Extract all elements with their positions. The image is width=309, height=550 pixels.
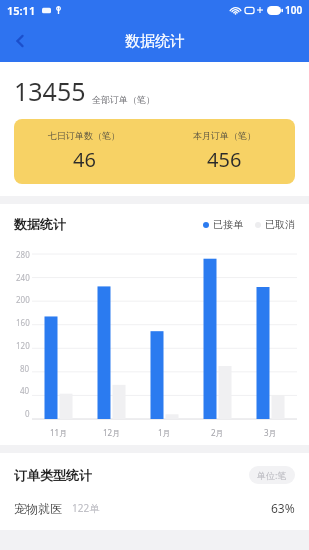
- staticText: 11月: [50, 427, 68, 438]
- staticText: 1月: [158, 427, 171, 438]
- button[interactable]: 宠物就医: [0, 500, 309, 516]
- staticText: 已接单: [213, 218, 243, 231]
- staticText: 3月: [264, 427, 277, 438]
- staticText: 280: [16, 249, 30, 260]
- staticText: 240: [16, 272, 30, 283]
- staticText: 456: [207, 146, 242, 173]
- staticText: 0: [25, 408, 30, 419]
- button[interactable]: 七日订单数（笔）: [14, 119, 295, 184]
- staticText: 12月: [103, 427, 121, 438]
- staticText: 80: [20, 363, 30, 374]
- staticText: 本月订单（笔）: [193, 130, 256, 141]
- staticText: 200: [16, 294, 30, 305]
- staticText: 2月: [211, 427, 224, 438]
- staticText: 122单: [72, 501, 100, 515]
- staticText: 46: [73, 146, 96, 173]
- staticText: 全部订单（笔）: [92, 94, 155, 105]
- staticText: 160: [16, 317, 30, 328]
- button[interactable]: Back: [0, 21, 40, 61]
- staticText: 七日订单数（笔）: [48, 130, 120, 141]
- staticText: 100: [285, 3, 303, 17]
- staticText: 数据统计: [125, 32, 185, 51]
- staticText: 15:11: [7, 3, 36, 18]
- staticText: 订单类型统计: [14, 467, 92, 483]
- staticText: 宠物就医: [14, 501, 62, 516]
- staticText: 已取消: [265, 218, 295, 231]
- staticText: 数据统计: [14, 216, 66, 232]
- staticText: 63%: [271, 500, 295, 516]
- staticText: 40: [20, 385, 30, 396]
- staticText: 120: [16, 340, 30, 351]
- staticText: 单位:笔: [257, 469, 287, 481]
- staticText: 13455: [14, 74, 86, 108]
